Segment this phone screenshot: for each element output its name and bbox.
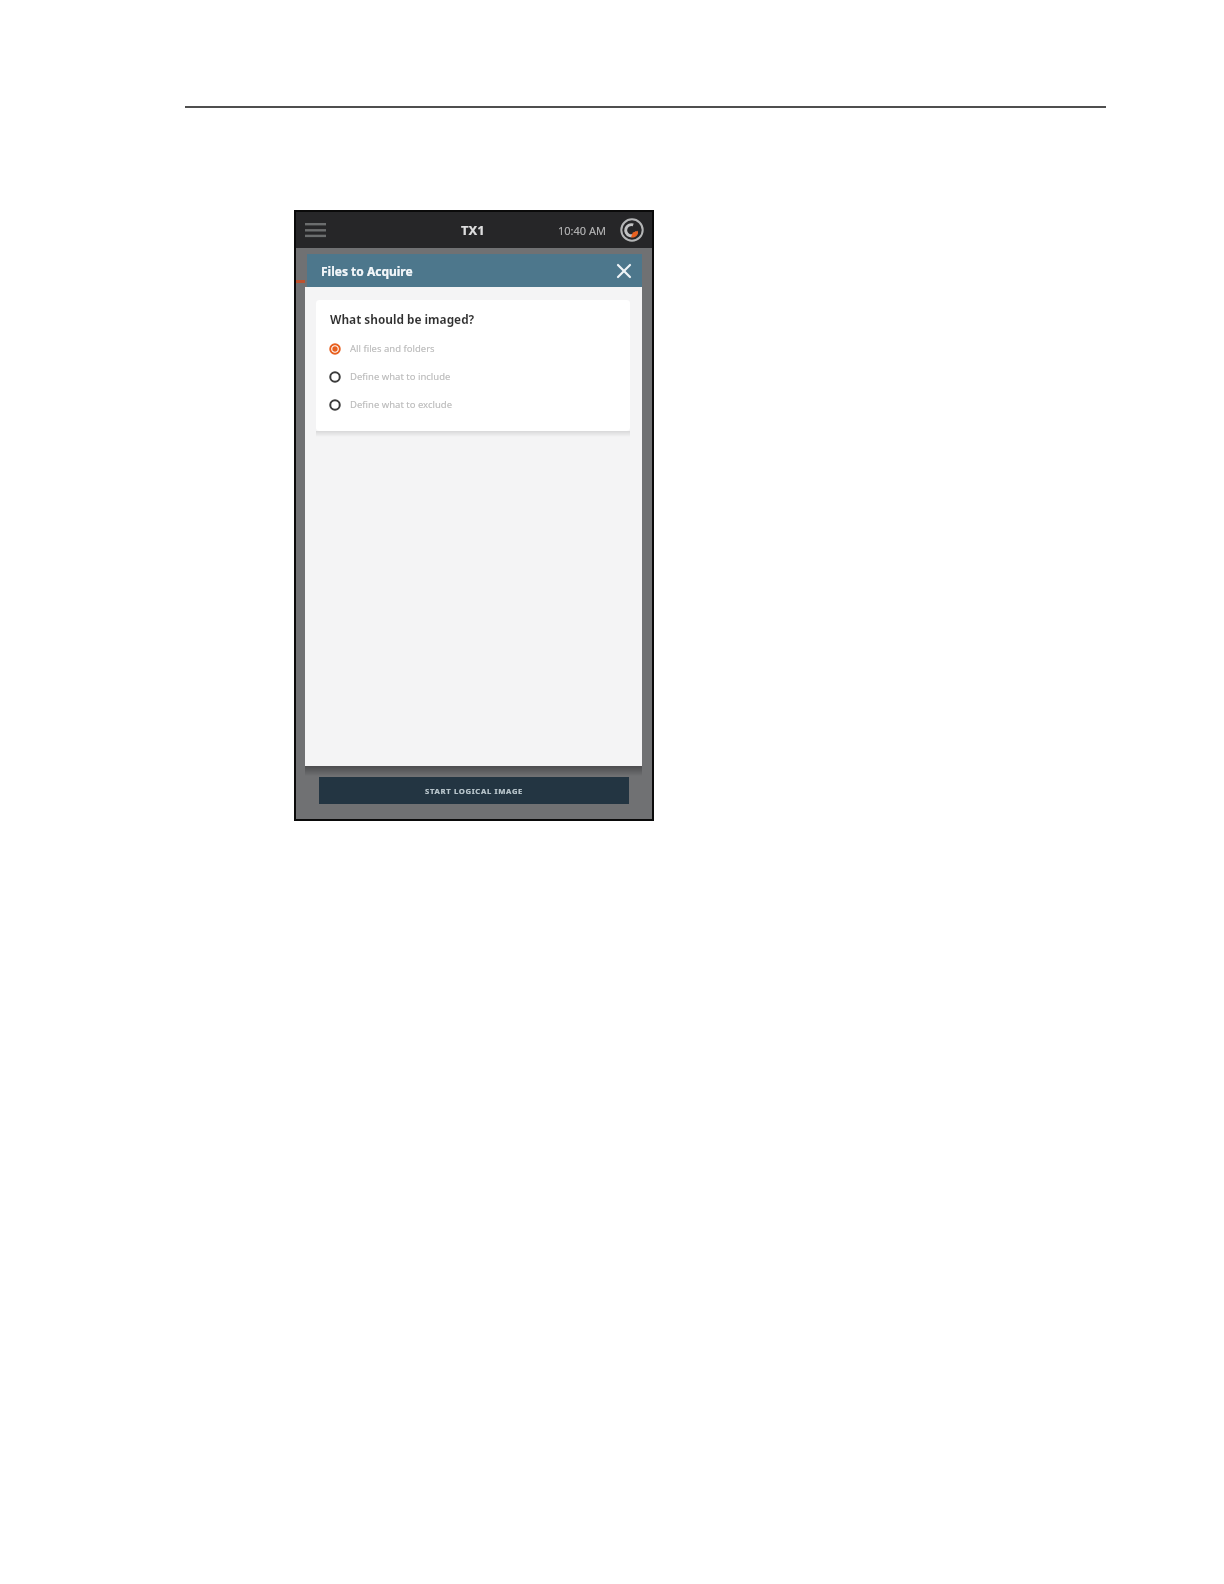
button[interactable]: Menu (302, 217, 327, 244)
staticText: 10:40 AM (558, 223, 606, 238)
staticText: All files and folders (350, 342, 435, 355)
button[interactable]: Close (611, 258, 637, 284)
button[interactable]: START LOGICAL IMAGE (319, 777, 629, 804)
button[interactable]: Define what to exclude (329, 394, 621, 416)
staticText: Define what to include (350, 370, 451, 383)
staticText: TX1 (461, 221, 485, 239)
staticText: START LOGICAL IMAGE (425, 786, 524, 796)
staticText: Define what to exclude (350, 398, 453, 411)
staticText: What should be imaged? (330, 311, 475, 327)
staticText: Files to Acquire (321, 263, 413, 279)
button[interactable]: App logo (618, 216, 646, 244)
button[interactable]: All files and folders (329, 338, 621, 360)
button[interactable]: Define what to include (329, 366, 621, 388)
